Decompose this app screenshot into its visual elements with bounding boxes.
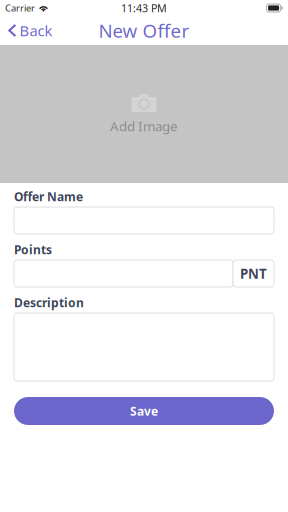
staticText: Offer Name	[14, 188, 83, 204]
staticText: Description	[14, 294, 84, 310]
staticText: Back	[20, 21, 53, 40]
button[interactable]: Save	[14, 397, 274, 425]
staticText: 11:43 PM	[121, 1, 167, 15]
staticText: New Offer	[98, 18, 189, 43]
staticText: PNT	[240, 265, 267, 282]
button[interactable]: Back	[0, 16, 59, 45]
staticText: Points	[14, 241, 52, 257]
staticText: Save	[130, 403, 158, 419]
staticText: Carrier	[5, 2, 35, 14]
button[interactable]: Add Image	[0, 45, 288, 183]
staticText: Add Image	[110, 117, 178, 135]
